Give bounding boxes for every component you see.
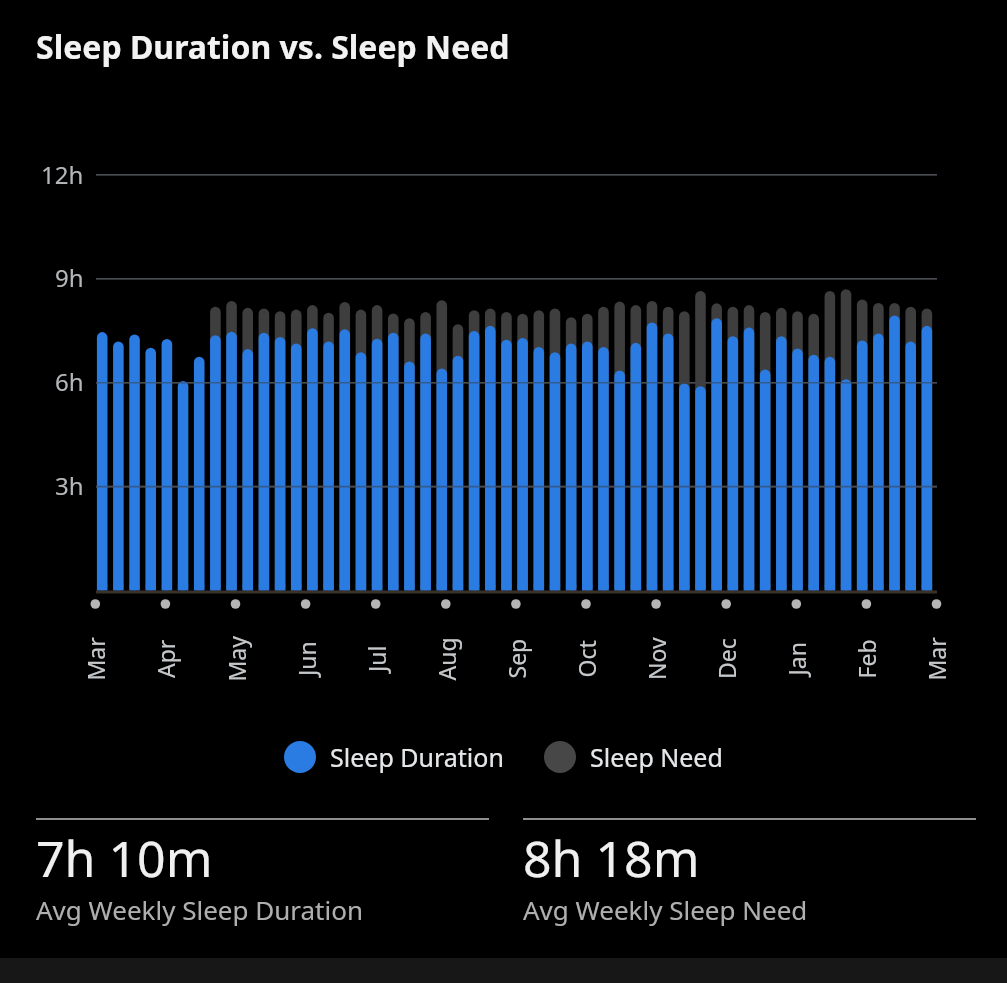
staticText: Apr: [150, 639, 181, 678]
staticText: Sleep Duration: [330, 740, 504, 774]
staticText: 12h: [41, 158, 84, 190]
staticText: 6h: [55, 365, 84, 397]
button[interactable]: 8h 18m: [523, 818, 976, 927]
staticText: Sleep Need: [590, 740, 723, 774]
staticText: Avg Weekly Sleep Duration: [36, 892, 363, 927]
staticText: Mar: [79, 636, 110, 680]
staticText: Mar: [920, 636, 951, 680]
button[interactable]: Sleep Need: [544, 740, 723, 774]
staticText: 7h 10m: [36, 824, 213, 892]
button[interactable]: Sleep Duration: [284, 740, 504, 774]
button[interactable]: 7h 10m: [36, 818, 489, 927]
staticText: Oct: [570, 639, 601, 677]
staticText: 3h: [55, 469, 84, 501]
staticText: 8h 18m: [523, 824, 700, 892]
staticText: 9h: [55, 261, 84, 293]
staticText: Sleep Duration vs. Sleep Need: [36, 25, 510, 69]
staticText: Jan: [780, 641, 811, 675]
staticText: May: [220, 635, 251, 681]
staticText: Dec: [711, 638, 742, 679]
staticText: Feb: [850, 638, 881, 678]
staticText: Jun: [291, 641, 322, 676]
staticText: Aug: [430, 636, 461, 680]
staticText: Avg Weekly Sleep Need: [523, 892, 808, 927]
staticText: Sep: [500, 638, 531, 678]
staticText: Nov: [641, 637, 672, 680]
staticText: Jul: [361, 645, 392, 672]
